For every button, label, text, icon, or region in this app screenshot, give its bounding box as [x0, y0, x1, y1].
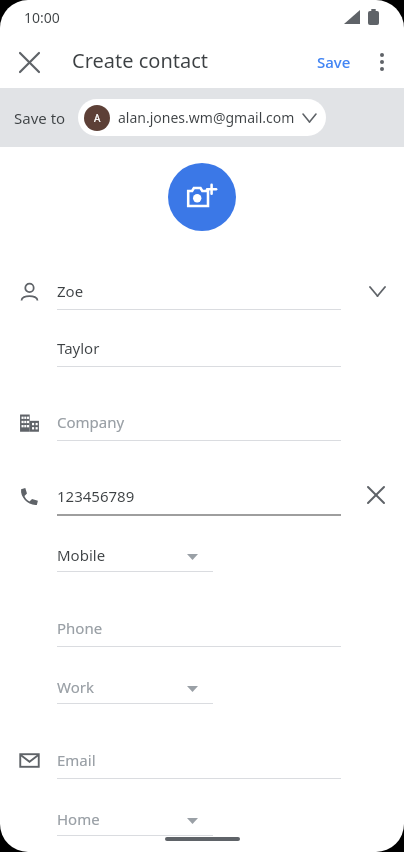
button[interactable]: Name — [12, 275, 46, 309]
staticText: A — [94, 111, 101, 125]
button[interactable]: Home — [57, 807, 213, 835]
button[interactable]: Clear phone number — [357, 476, 395, 514]
button[interactable]: Close — [9, 42, 49, 82]
staticText: Taylor — [57, 338, 100, 358]
staticText: alan.jones.wm@gmail.com — [118, 108, 295, 127]
staticText: Zoe — [57, 281, 84, 301]
button[interactable]: Mobile — [57, 543, 213, 571]
button[interactable]: Email — [12, 743, 46, 777]
button[interactable] — [57, 330, 341, 366]
staticText: Create contact — [72, 47, 209, 74]
button[interactable]: Company — [12, 405, 46, 439]
staticText: Email — [57, 750, 96, 770]
button[interactable]: Add photo — [168, 163, 236, 231]
button[interactable]: Work — [57, 675, 213, 703]
staticText: Mobile — [57, 545, 106, 565]
staticText: 10:00 — [24, 8, 60, 27]
button[interactable]: Expand name fields — [358, 272, 396, 310]
staticText: Save to — [14, 108, 66, 128]
staticText: Phone — [57, 618, 103, 638]
button[interactable] — [57, 610, 341, 646]
staticText: Work — [57, 677, 94, 697]
staticText: Home — [57, 809, 100, 829]
button[interactable]: A — [78, 99, 326, 136]
button[interactable]: More options — [362, 42, 402, 82]
button[interactable]: Save — [306, 40, 362, 84]
staticText: 123456789 — [57, 486, 135, 506]
staticText: Save — [317, 52, 351, 72]
button[interactable]: Phone — [12, 479, 46, 513]
staticText: Company — [57, 412, 125, 432]
